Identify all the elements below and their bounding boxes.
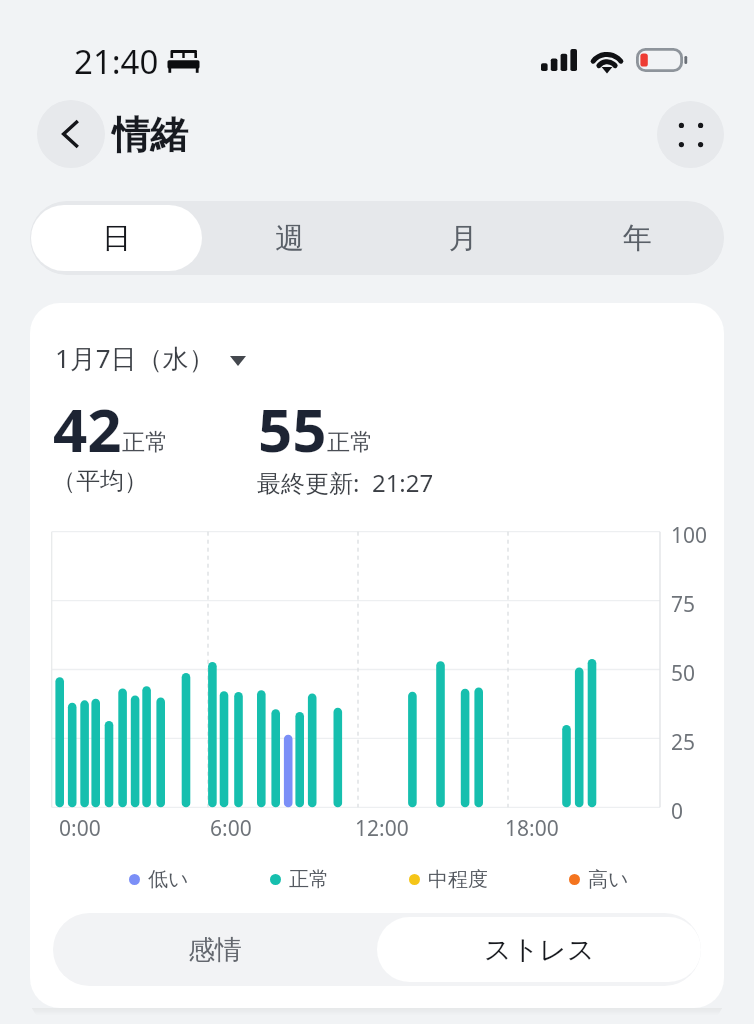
button[interactable]: More options bbox=[657, 101, 724, 168]
staticText: 0:00 bbox=[59, 814, 101, 843]
staticText: 55 bbox=[258, 388, 327, 470]
staticText: ストレス bbox=[484, 933, 595, 967]
staticText: 感情 bbox=[188, 933, 242, 967]
staticText: 日 bbox=[102, 220, 131, 257]
button[interactable]: ストレス bbox=[377, 917, 701, 982]
staticText: 年 bbox=[623, 220, 652, 257]
staticText: 18:00 bbox=[505, 814, 559, 843]
button[interactable]: 年 bbox=[551, 205, 723, 271]
staticText: 75 bbox=[671, 590, 696, 619]
button[interactable]: 月 bbox=[377, 205, 549, 271]
staticText: 週 bbox=[275, 220, 304, 257]
staticText: 6:00 bbox=[210, 814, 252, 843]
staticText: 正常 bbox=[289, 867, 329, 892]
staticText: （平均） bbox=[52, 466, 148, 496]
staticText: 情緒 bbox=[112, 111, 188, 159]
button[interactable]: 週 bbox=[204, 205, 375, 271]
staticText: 中程度 bbox=[428, 867, 488, 892]
staticText: 最終更新: 21:27 bbox=[257, 466, 434, 499]
staticText: 0 bbox=[671, 797, 684, 826]
staticText: 50 bbox=[671, 659, 696, 688]
button[interactable]: 日 bbox=[31, 205, 202, 271]
staticText: 42 bbox=[53, 388, 122, 470]
staticText: 1月7日（水） bbox=[55, 340, 215, 376]
staticText: 100 bbox=[671, 521, 708, 550]
staticText: 正常 bbox=[122, 428, 168, 457]
staticText: 12:00 bbox=[355, 814, 409, 843]
button[interactable]: Back bbox=[37, 100, 105, 168]
staticText: 21:40 bbox=[74, 39, 159, 84]
staticText: 正常 bbox=[327, 428, 373, 457]
staticText: 高い bbox=[588, 867, 629, 892]
staticText: 低い bbox=[148, 867, 189, 892]
staticText: 25 bbox=[671, 728, 696, 757]
button[interactable]: 感情 bbox=[53, 913, 377, 986]
button[interactable]: 1月7日（水） bbox=[50, 335, 286, 379]
staticText: 月 bbox=[449, 220, 478, 257]
